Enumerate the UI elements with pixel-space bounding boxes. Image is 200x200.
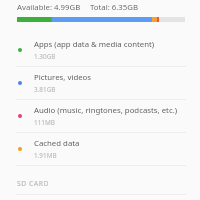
staticText: 3.81GB: [34, 85, 56, 94]
button[interactable]: Apps (app data & media content): [0, 34, 200, 66]
staticText: Total: 6.35GB: [90, 2, 139, 13]
staticText: 1.91MB: [34, 151, 57, 160]
staticText: Audio (music, ringtones, podcasts, etc.): [34, 105, 178, 116]
staticText: 111MB: [34, 118, 55, 127]
staticText: Cached data: [34, 138, 80, 149]
button[interactable]: Cached data: [0, 133, 200, 165]
staticText: Apps (app data & media content): [34, 39, 155, 50]
staticText: Available: 4.99GB: [17, 2, 81, 13]
staticText: 1.30GB: [34, 52, 56, 61]
staticText: SD CARD: [17, 179, 50, 188]
button[interactable]: Audio (music, ringtones, podcasts, etc.): [0, 100, 200, 132]
staticText: Pictures, videos: [34, 72, 92, 83]
button[interactable]: Pictures, videos: [0, 67, 200, 99]
